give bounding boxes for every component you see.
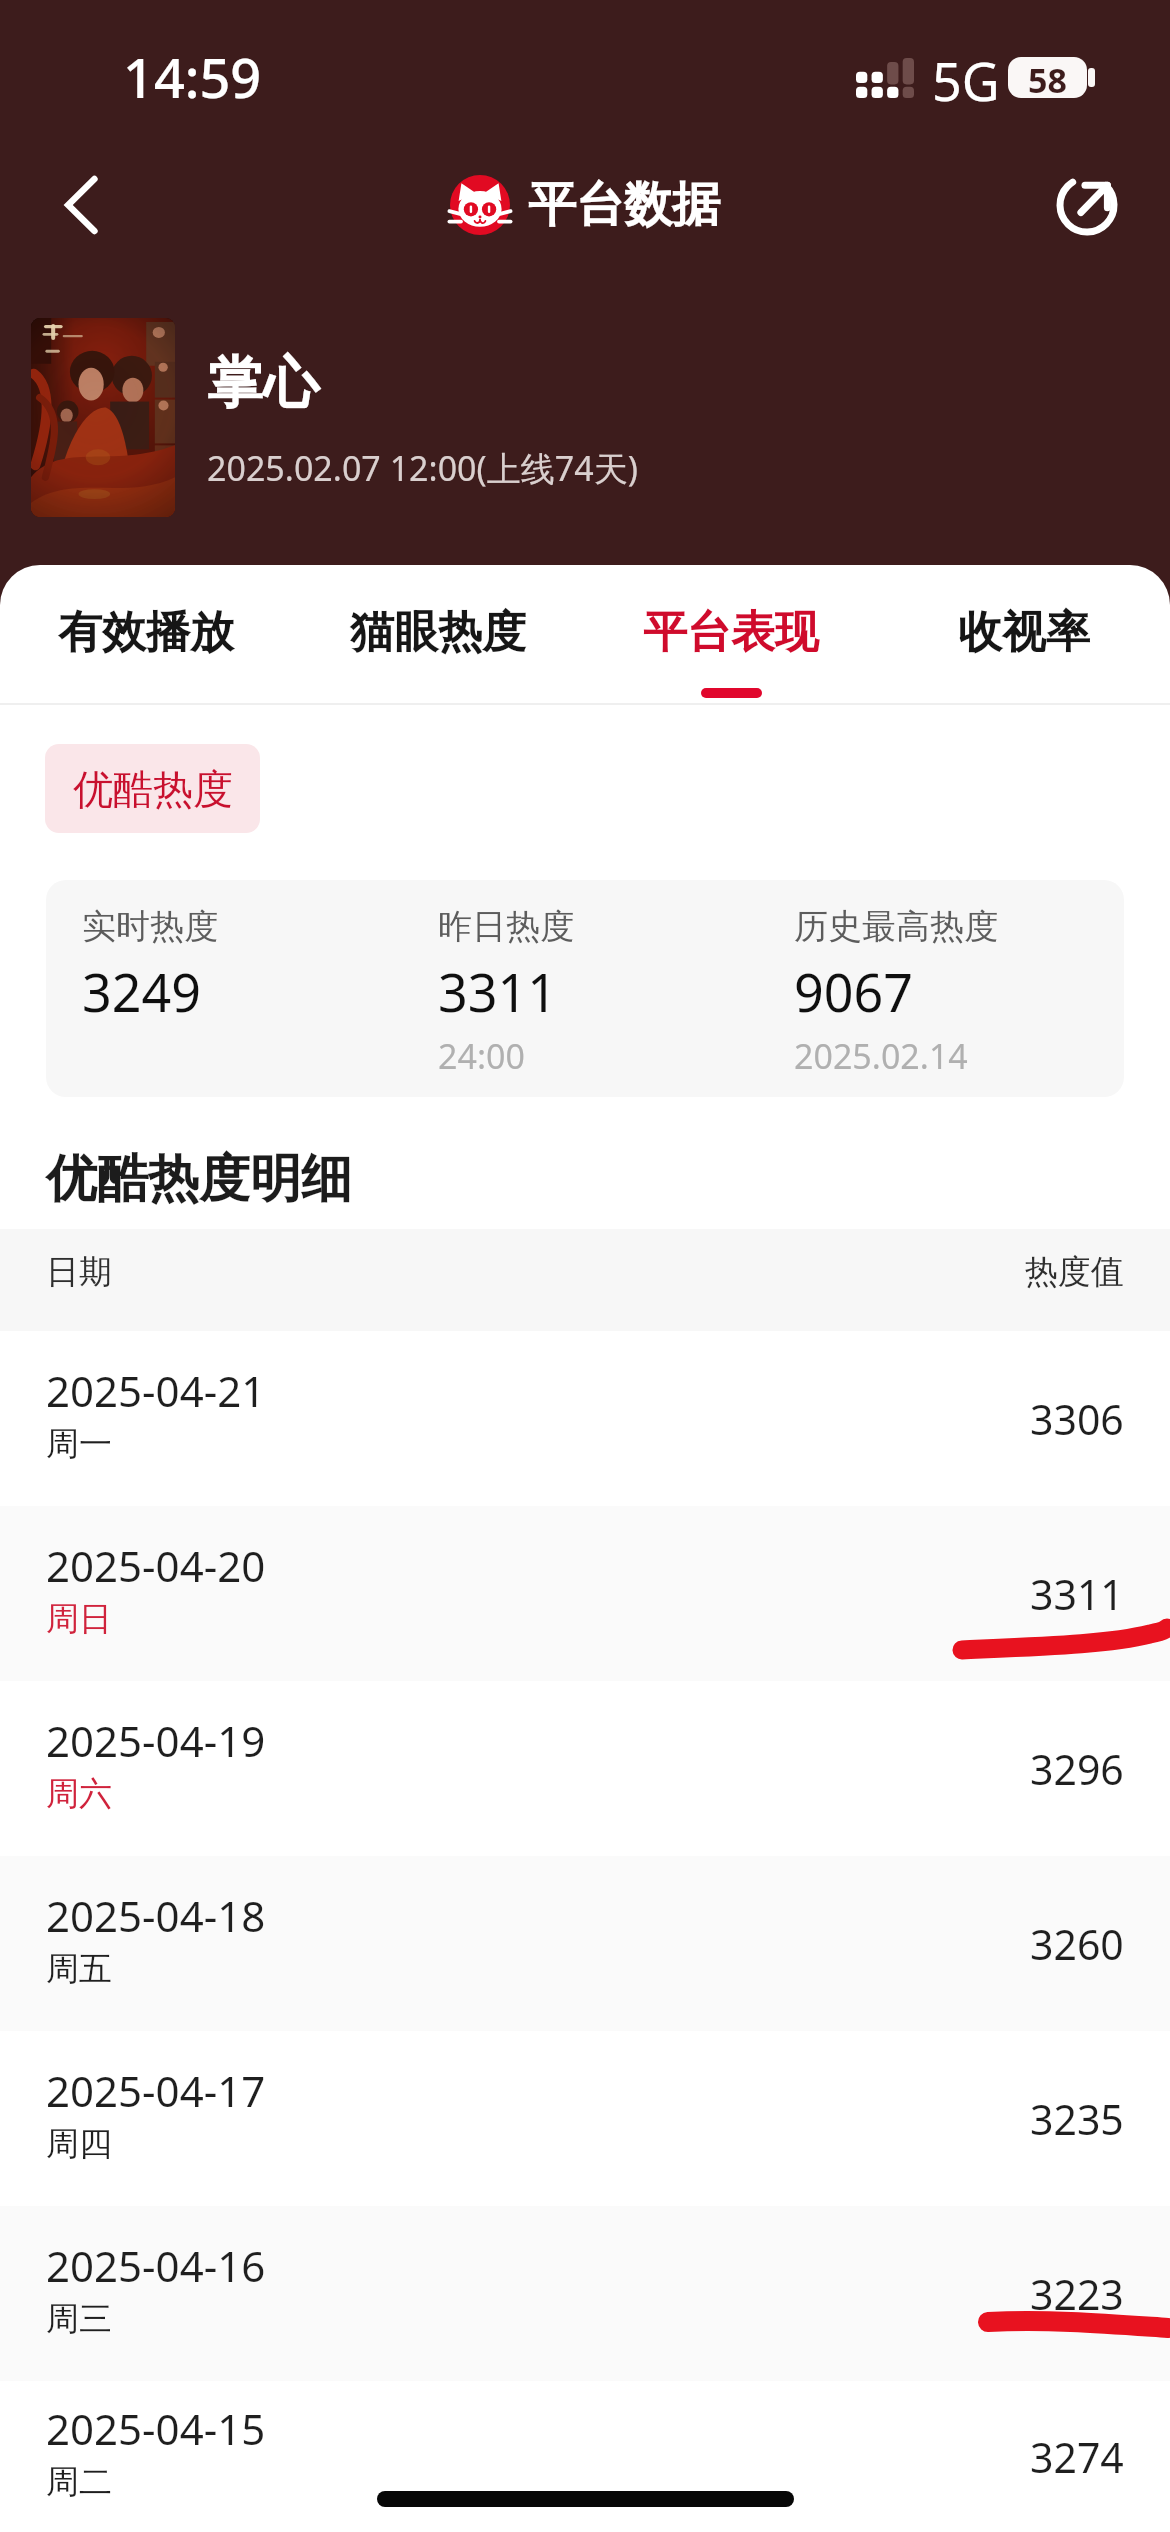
staticText: 3223 <box>1030 2266 1124 2322</box>
staticText: 3274 <box>1030 2429 1124 2485</box>
staticText: 3249 <box>82 956 201 1027</box>
button[interactable]: 收视率 <box>877 565 1170 703</box>
button[interactable]: 2025-04-20 <box>0 1506 1170 1681</box>
staticText: 3311 <box>438 956 557 1027</box>
staticText: 2025-04-19 <box>46 1712 266 1769</box>
button[interactable]: 优酷热度 <box>45 744 260 833</box>
staticText: 58 <box>1028 57 1067 98</box>
staticText: 热度值 <box>1025 1251 1124 1293</box>
staticText: 2025-04-18 <box>46 1887 266 1944</box>
staticText: 优酷热度 <box>73 764 233 814</box>
staticText: 2025.02.14 <box>794 1033 968 1079</box>
staticText: 实时热度 <box>82 905 218 948</box>
button[interactable]: 2025-04-21 <box>0 1331 1170 1506</box>
staticText: 优酷热度明细 <box>46 1147 352 1211</box>
staticText: 3306 <box>1030 1391 1124 1447</box>
staticText: 3235 <box>1030 2091 1124 2147</box>
button[interactable]: 有效播放 <box>0 565 292 703</box>
staticText: 周三 <box>46 2298 112 2340</box>
button[interactable]: 猫眼热度 <box>292 565 584 703</box>
button[interactable]: 2025-04-19 <box>0 1681 1170 1856</box>
staticText: 2025.02.07 12:00(上线74天) <box>207 445 638 491</box>
button[interactable]: 平台表现 <box>584 565 877 703</box>
staticText: 2025-04-20 <box>46 1537 266 1594</box>
staticText: 掌心 <box>207 348 319 419</box>
staticText: 猫眼热度 <box>350 605 526 660</box>
staticText: 2025-04-15 <box>46 2400 266 2457</box>
staticText: 收视率 <box>958 605 1090 660</box>
staticText: 14:59 <box>123 40 262 114</box>
button[interactable]: 2025-04-15 <box>0 2381 1170 2532</box>
button[interactable]: 2025-04-16 <box>0 2206 1170 2381</box>
button[interactable]: Share <box>1032 150 1142 260</box>
staticText: 3260 <box>1030 1916 1124 1972</box>
staticText: 2025-04-16 <box>46 2237 266 2294</box>
staticText: 有效播放 <box>58 605 234 660</box>
staticText: 周日 <box>46 1598 112 1640</box>
staticText: 昨日热度 <box>438 905 574 948</box>
staticText: 周一 <box>46 1423 112 1465</box>
staticText: 2025-04-21 <box>46 1362 266 1419</box>
staticText: 周六 <box>46 1773 112 1815</box>
staticText: 3311 <box>1030 1566 1124 1622</box>
staticText: 平台表现 <box>643 605 819 660</box>
staticText: 日期 <box>46 1251 112 1293</box>
staticText: 历史最高热度 <box>794 905 998 948</box>
staticText: 平台数据 <box>528 175 720 235</box>
staticText: 周四 <box>46 2123 112 2165</box>
staticText: 周五 <box>46 1948 112 1990</box>
button[interactable]: Back <box>26 150 136 260</box>
staticText: 5G <box>932 45 1000 116</box>
button[interactable]: 2025-04-18 <box>0 1856 1170 2031</box>
staticText: 24:00 <box>438 1033 525 1079</box>
button[interactable]: 2025-04-17 <box>0 2031 1170 2206</box>
staticText: 9067 <box>794 956 913 1027</box>
staticText: 3296 <box>1030 1741 1124 1797</box>
staticText: 2025-04-17 <box>46 2062 266 2119</box>
staticText: 周二 <box>46 2461 112 2503</box>
